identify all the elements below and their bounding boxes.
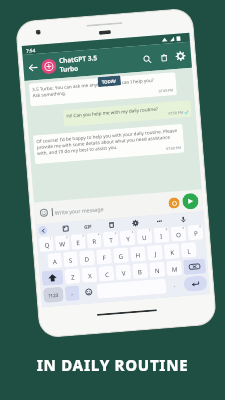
staticText: H [135, 250, 141, 259]
button[interactable]: Voice input [177, 213, 188, 224]
button[interactable]: F [96, 249, 112, 265]
staticText: D [84, 254, 90, 263]
button[interactable]: U [136, 228, 153, 244]
staticText: P [194, 229, 198, 237]
staticText: Write your message [55, 205, 104, 216]
staticText: 2 [66, 235, 68, 239]
button[interactable]: A [47, 253, 62, 269]
staticText: B [137, 267, 143, 276]
button[interactable]: S [63, 251, 78, 267]
button[interactable]: Stickers [60, 223, 71, 234]
button[interactable]: 3.5 Turbo: You can ask me anything. How … [29, 72, 177, 106]
staticText: N [154, 266, 160, 274]
button[interactable]: Delete [154, 48, 173, 67]
staticText: 6 [131, 230, 134, 234]
button[interactable]: Y [120, 230, 136, 246]
button[interactable]: O [170, 226, 186, 242]
button[interactable]: T [103, 231, 119, 247]
staticText: U [142, 233, 147, 241]
staticText: 4 [98, 232, 100, 237]
staticText: R [92, 237, 97, 245]
staticText: G [118, 252, 124, 260]
staticText: 07:50 PM [166, 145, 181, 151]
staticText: I [160, 231, 163, 240]
staticText: Z [71, 272, 75, 281]
staticText: Hi! Can you help me with my daily routin… [66, 105, 158, 119]
staticText: Ask something. [32, 90, 67, 98]
button[interactable]: P [187, 224, 203, 240]
button[interactable]: L [181, 242, 197, 258]
button[interactable]: Shift [41, 269, 64, 286]
button[interactable]: M [166, 260, 182, 276]
button[interactable]: Emoji [37, 206, 50, 219]
staticText: K [170, 248, 175, 256]
button[interactable]: ?123 [43, 286, 64, 303]
button[interactable]: , [65, 285, 80, 301]
staticText: 7:54 [26, 47, 35, 54]
button[interactable]: I [153, 227, 169, 243]
button[interactable]: Emoji keyboard [81, 284, 96, 300]
button[interactable]: V [115, 264, 131, 280]
button[interactable]: . [167, 277, 182, 293]
staticText: TODAY [102, 78, 117, 85]
button[interactable]: Search [137, 50, 156, 68]
staticText: ChatGPT 3.5 [59, 53, 98, 65]
staticText: S [68, 256, 73, 264]
staticText: M [171, 264, 178, 273]
button[interactable]: Of course! I'd be happy to help you with… [33, 124, 185, 164]
button[interactable]: Send [182, 193, 199, 210]
staticText: ?123 [48, 292, 59, 299]
staticText: GIF [84, 223, 92, 230]
button[interactable]: Attach [168, 197, 180, 209]
button[interactable]: Space [97, 278, 167, 299]
staticText: Turbo [59, 64, 79, 74]
button[interactable]: Q [39, 236, 54, 252]
button[interactable]: Z [64, 268, 80, 284]
staticText: 0 [199, 224, 202, 229]
staticText: V [121, 268, 126, 277]
staticText: Y [126, 234, 130, 242]
staticText: A [52, 257, 57, 265]
button[interactable]: X [81, 267, 97, 283]
staticText: , [71, 290, 73, 297]
button[interactable]: Back [23, 58, 42, 77]
button[interactable]: C [98, 265, 114, 282]
button[interactable]: R [87, 232, 102, 248]
staticText: IN DAILY ROUTINE [0, 355, 225, 375]
staticText: X [88, 271, 92, 279]
button[interactable]: Backspace [183, 258, 206, 275]
button[interactable]: Enter [183, 275, 207, 292]
button[interactable]: N [149, 261, 165, 278]
staticText: J [154, 249, 157, 257]
button[interactable]: J [147, 245, 163, 261]
staticText: 8 [165, 227, 168, 231]
button[interactable]: H [130, 246, 146, 262]
staticText: 3.5 Turbo: You can ask me anything. How … [32, 77, 154, 92]
button[interactable]: GIF [84, 223, 92, 230]
button[interactable]: B [132, 263, 148, 279]
staticText: 3 [82, 234, 84, 238]
button[interactable]: G [113, 247, 129, 263]
staticText: 07:50 PM [168, 109, 184, 116]
button[interactable]: Expand toolbar [38, 226, 48, 235]
button[interactable]: ChatGPT 3.5 [59, 50, 139, 74]
staticText: Q [44, 240, 50, 249]
staticText: 9 [182, 226, 185, 230]
staticText: Of course! I'd be happy to help you with… [36, 127, 181, 156]
staticText: W [59, 239, 66, 248]
button[interactable]: Hi! Can you help me with my daily routin… [63, 100, 192, 127]
staticText: 7 [148, 228, 151, 233]
button[interactable]: K [164, 243, 180, 259]
staticText: . [174, 282, 176, 289]
staticText: T [109, 235, 113, 244]
button[interactable]: Clipboard [106, 219, 116, 230]
button[interactable]: More [153, 215, 164, 226]
button[interactable]: E [71, 234, 86, 250]
staticText: F [102, 253, 107, 261]
button[interactable]: W [55, 235, 70, 251]
button[interactable]: Keyboard settings [130, 217, 140, 228]
staticText: 1 [50, 236, 52, 240]
button[interactable]: Settings [171, 47, 190, 65]
button[interactable]: Write your message [52, 199, 169, 216]
button[interactable]: D [79, 250, 95, 266]
